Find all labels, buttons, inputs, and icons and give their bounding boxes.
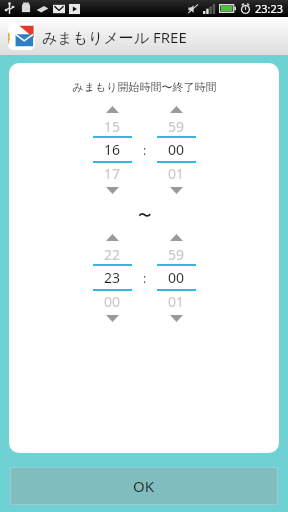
button[interactable]: 16 xyxy=(92,138,133,161)
staticText: : xyxy=(143,270,147,286)
staticText: 00 xyxy=(104,292,121,311)
button[interactable]: Decrement xyxy=(156,311,197,325)
staticText: 17 xyxy=(104,164,121,183)
button[interactable]: Decrement xyxy=(92,311,133,325)
staticText: 00 xyxy=(168,268,185,287)
staticText: 59 xyxy=(168,117,185,136)
button[interactable]: Decrement xyxy=(156,183,197,197)
button[interactable]: OK xyxy=(11,468,277,504)
staticText: 16 xyxy=(104,140,121,159)
button[interactable]: 23 xyxy=(92,266,133,289)
staticText: 〜 xyxy=(138,207,151,223)
staticText: 23:23 xyxy=(255,1,284,16)
button[interactable]: Increment xyxy=(92,231,133,244)
staticText: 59 xyxy=(168,245,185,264)
button[interactable]: Increment xyxy=(156,103,197,116)
staticText: 23 xyxy=(104,268,121,287)
button[interactable]: 00 xyxy=(156,266,197,289)
staticText: みまもりメール FREE xyxy=(42,27,187,47)
staticText: : xyxy=(143,142,147,158)
button[interactable]: 00 xyxy=(156,138,197,161)
staticText: 22 xyxy=(104,245,121,264)
staticText: 15 xyxy=(104,117,121,136)
staticText: みまもり開始時間〜終了時間 xyxy=(72,80,217,94)
staticText: OK xyxy=(133,476,155,496)
button[interactable]: Increment xyxy=(156,231,197,244)
button[interactable]: Increment xyxy=(92,103,133,116)
staticText: 01 xyxy=(168,164,185,183)
staticText: 00 xyxy=(168,140,185,159)
staticText: 01 xyxy=(168,292,185,311)
button[interactable]: Decrement xyxy=(92,183,133,197)
